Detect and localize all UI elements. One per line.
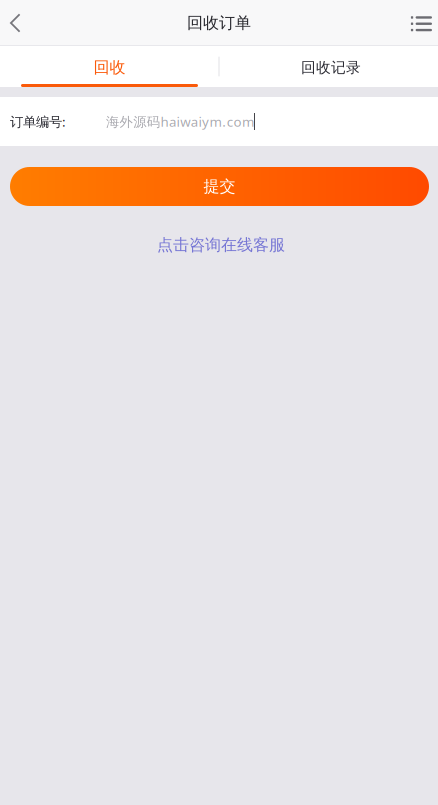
staticText: 海外源码haiwaiym.com: [106, 113, 254, 130]
button[interactable]: 点击咨询在线客服: [153, 235, 285, 255]
button[interactable]: 提交: [10, 167, 429, 206]
staticText: 订单编号:: [10, 113, 66, 130]
staticText: 点击咨询在线客服: [157, 235, 285, 255]
staticText: 回收订单: [187, 13, 251, 33]
button[interactable]: Menu: [394, 0, 438, 46]
staticText: 提交: [203, 177, 235, 196]
button[interactable]: 回收: [0, 46, 219, 87]
button[interactable]: 回收记录: [219, 46, 438, 87]
button[interactable]: Back: [0, 0, 42, 46]
staticText: 回收: [93, 58, 125, 77]
staticText: 回收记录: [301, 58, 361, 76]
